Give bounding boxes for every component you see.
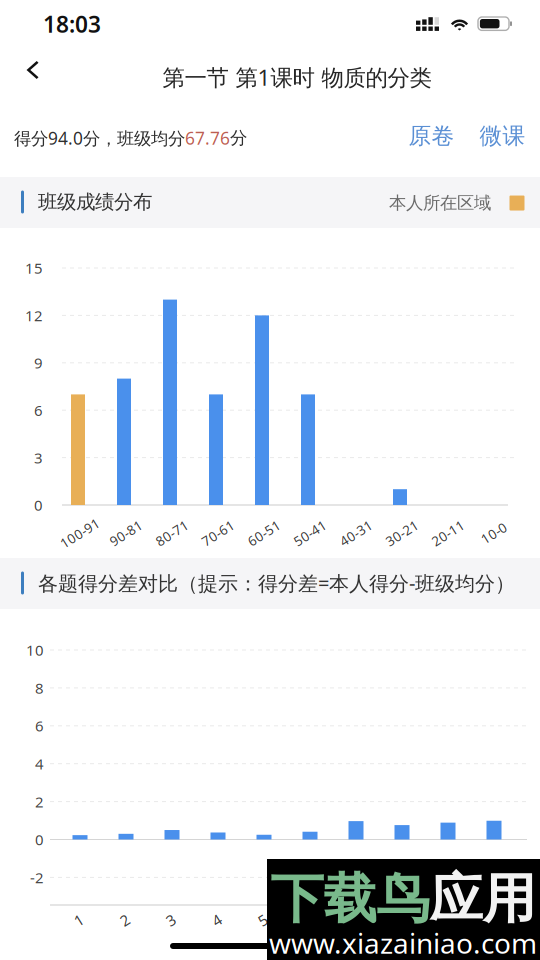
staticText: 3 — [34, 447, 43, 468]
staticText: 得分94.0分，班级均分 — [14, 126, 185, 149]
staticText: 8 — [35, 678, 44, 698]
staticText: 本人所在区域 — [389, 192, 491, 214]
staticText: -2 — [30, 867, 44, 887]
staticText: 12 — [25, 305, 43, 325]
staticText: 8 — [396, 910, 405, 930]
staticText: 7 — [350, 910, 359, 930]
staticText: 5 — [258, 910, 267, 930]
staticText: 15 — [25, 258, 43, 278]
staticText: 应用 — [429, 866, 535, 932]
button[interactable]: 微课 — [474, 118, 530, 154]
staticText: 3 — [166, 910, 175, 930]
staticText: 50-41 — [292, 524, 328, 542]
button[interactable]: 原卷 — [403, 118, 459, 154]
staticText: 下载鸟 — [270, 866, 429, 932]
staticText: 90-81 — [108, 524, 144, 542]
staticText: 0 — [35, 829, 44, 850]
staticText: 20-11 — [430, 524, 466, 542]
staticText: 10-0 — [480, 524, 508, 542]
staticText: 原卷 — [408, 122, 454, 150]
staticText: 2 — [120, 910, 129, 930]
staticText: 分 — [230, 127, 247, 149]
staticText: www.xiazainiao.com — [269, 924, 537, 960]
staticText: 第一节 第1课时 物质的分类 — [162, 62, 431, 92]
staticText: 4 — [35, 753, 44, 774]
staticText: 67.76 — [185, 126, 230, 149]
staticText: 40-31 — [338, 524, 374, 542]
staticText: 9 — [34, 353, 43, 373]
button[interactable]: Back — [6, 48, 58, 92]
staticText: 60-51 — [246, 524, 282, 542]
staticText: 70-61 — [200, 524, 236, 542]
staticText: 班级成绩分布 — [38, 190, 152, 214]
staticText: 10 — [26, 640, 44, 660]
staticText: 4 — [212, 910, 221, 930]
staticText: 6 — [35, 716, 44, 736]
staticText: 0 — [34, 495, 43, 515]
staticText: 10 — [484, 910, 502, 930]
staticText: 2 — [35, 791, 44, 812]
staticText: 1 — [74, 910, 83, 930]
staticText: 80-71 — [154, 524, 190, 542]
staticText: 各题得分差对比（提示：得分差=本人得分-班级均分） — [38, 570, 515, 596]
staticText: 6 — [34, 400, 43, 420]
staticText: 30-21 — [384, 524, 420, 542]
staticText: 18:03 — [43, 9, 101, 39]
staticText: 微课 — [479, 122, 525, 150]
staticText: 100-91 — [58, 524, 102, 542]
staticText: 9 — [442, 910, 451, 930]
